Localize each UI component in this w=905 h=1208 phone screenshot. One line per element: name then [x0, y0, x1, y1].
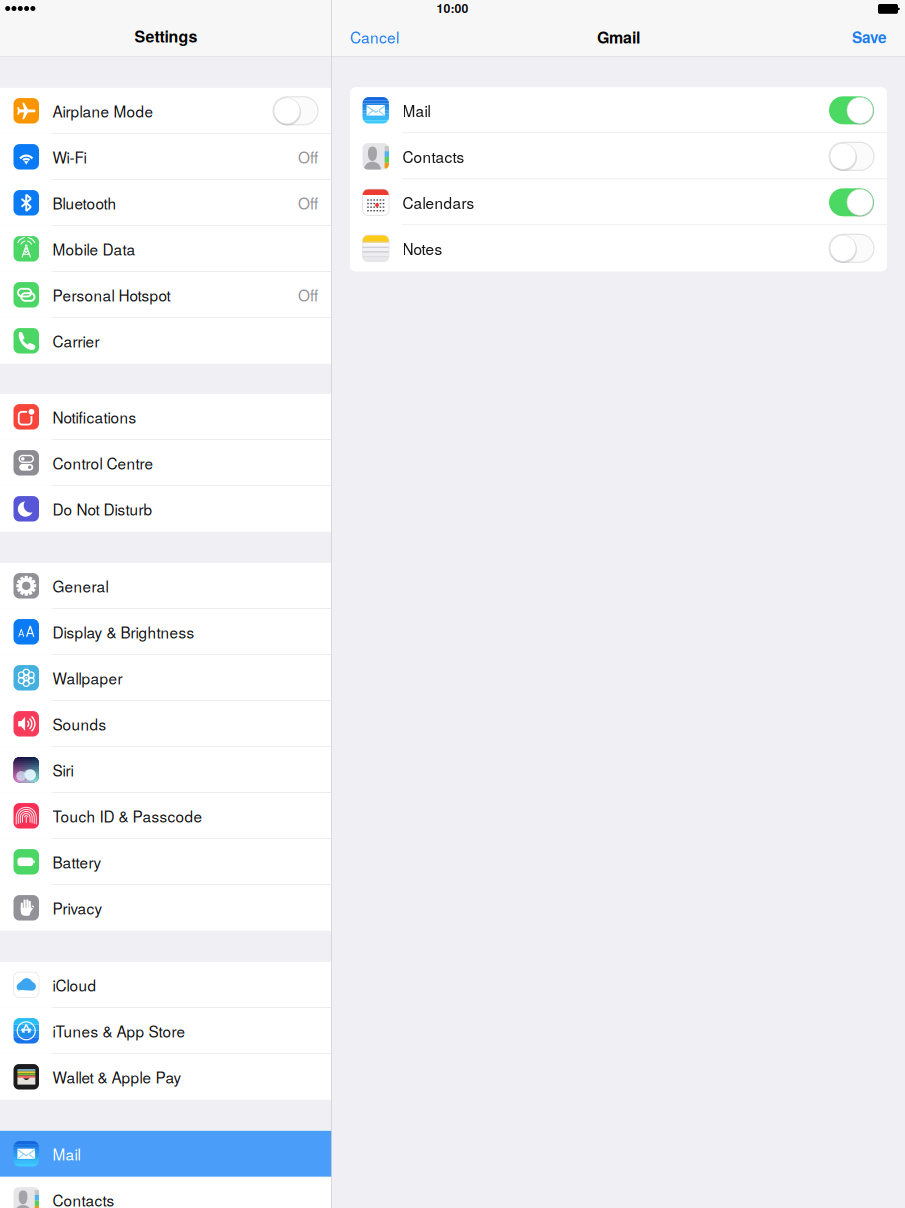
- button[interactable]: Cancel: [341, 24, 408, 50]
- staticText: Contacts: [52, 1189, 114, 1208]
- staticText: Wi-Fi: [52, 146, 86, 168]
- button[interactable]: Contacts: [0, 1177, 332, 1208]
- button[interactable]: Calendars: [350, 179, 887, 225]
- button[interactable]: Privacy: [0, 885, 332, 931]
- button[interactable]: Notes: [350, 225, 887, 271]
- staticText: Privacy: [52, 897, 102, 919]
- button[interactable]: Contacts: [350, 133, 887, 179]
- button[interactable]: Mail: [0, 1131, 332, 1177]
- staticText: iTunes & App Store: [52, 1020, 185, 1042]
- button[interactable]: Wallet & Apple Pay: [0, 1054, 332, 1100]
- staticText: iCloud: [52, 974, 96, 996]
- button[interactable]: Do Not Disturb: [0, 486, 332, 532]
- staticText: Notes: [402, 237, 442, 259]
- button[interactable]: General: [0, 563, 332, 609]
- staticText: General: [52, 575, 108, 597]
- staticText: Calendars: [402, 191, 474, 213]
- staticText: Settings: [134, 24, 197, 47]
- button[interactable]: Personal Hotspot: [0, 272, 332, 318]
- staticText: Siri: [52, 759, 73, 781]
- button[interactable]: Carrier: [0, 318, 332, 364]
- staticText: Off: [298, 146, 318, 168]
- button[interactable]: Control Centre: [0, 440, 332, 486]
- button[interactable]: Sounds: [0, 701, 332, 747]
- staticText: Gmail: [597, 25, 640, 48]
- staticText: Wallet & Apple Pay: [52, 1066, 181, 1088]
- button[interactable]: Airplane Mode: [0, 88, 332, 134]
- button[interactable]: Save: [843, 24, 896, 50]
- button[interactable]: iTunes & App Store: [0, 1008, 332, 1054]
- button[interactable]: Siri: [0, 747, 332, 793]
- staticText: Sounds: [52, 713, 106, 735]
- staticText: Off: [298, 192, 318, 214]
- staticText: Do Not Disturb: [52, 498, 152, 520]
- button[interactable]: Notifications: [0, 394, 332, 440]
- button[interactable]: Mail: [350, 87, 887, 133]
- staticText: Touch ID & Passcode: [52, 805, 202, 827]
- button[interactable]: Bluetooth: [0, 180, 332, 226]
- staticText: Contacts: [402, 145, 464, 167]
- staticText: Wallpaper: [52, 667, 122, 689]
- staticText: Cancel: [350, 26, 399, 48]
- staticText: Battery: [52, 851, 101, 873]
- staticText: Mail: [402, 99, 430, 121]
- staticText: Mobile Data: [52, 238, 135, 260]
- button[interactable]: iCloud: [0, 962, 332, 1008]
- staticText: Control Centre: [52, 452, 153, 474]
- button[interactable]: Battery: [0, 839, 332, 885]
- staticText: Display & Brightness: [52, 621, 194, 643]
- staticText: Off: [298, 284, 318, 306]
- staticText: Mail: [52, 1143, 80, 1165]
- button[interactable]: Wallpaper: [0, 655, 332, 701]
- staticText: Bluetooth: [52, 192, 116, 214]
- button[interactable]: Display & Brightness: [0, 609, 332, 655]
- button[interactable]: Touch ID & Passcode: [0, 793, 332, 839]
- button[interactable]: Wi-Fi: [0, 134, 332, 180]
- button[interactable]: Mobile Data: [0, 226, 332, 272]
- staticText: 10:00: [436, 0, 468, 17]
- staticText: Personal Hotspot: [52, 284, 170, 306]
- staticText: Save: [852, 26, 887, 48]
- staticText: Notifications: [52, 406, 136, 428]
- staticText: Airplane Mode: [52, 100, 153, 122]
- staticText: Carrier: [52, 330, 99, 352]
